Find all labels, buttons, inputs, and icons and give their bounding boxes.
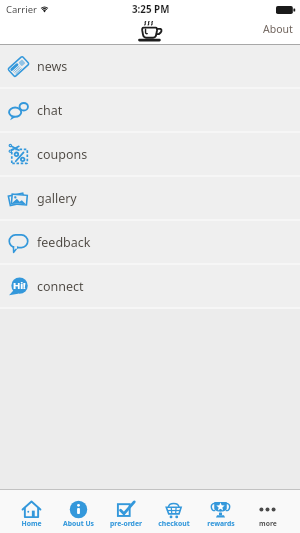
button[interactable]: feedback (0, 221, 300, 263)
button[interactable]: rewards (197, 490, 244, 533)
staticText: About Us (63, 519, 94, 528)
staticText: About (263, 22, 293, 36)
button[interactable]: About Us (55, 490, 102, 533)
button[interactable]: coupons (0, 133, 300, 175)
staticText: 3:25 PM (132, 3, 170, 16)
button[interactable]: gallery (0, 177, 300, 219)
staticText: coupons (37, 146, 88, 163)
button[interactable]: checkout (150, 490, 197, 533)
staticText: pre-order (110, 519, 142, 528)
staticText: checkout (158, 519, 190, 528)
staticText: more (259, 519, 277, 528)
staticText: feedback (37, 234, 91, 251)
staticText: news (37, 58, 68, 75)
staticText: Carrier (6, 3, 37, 16)
staticText: chat (37, 102, 63, 119)
other: more (258, 500, 277, 519)
staticText: Home (21, 519, 42, 528)
button[interactable]: chat (0, 89, 300, 131)
button[interactable]: more (244, 490, 291, 533)
button[interactable]: About (253, 20, 300, 44)
staticText: rewards (207, 519, 235, 528)
staticText: Hi! (13, 279, 26, 292)
staticText: connect (37, 278, 84, 295)
button[interactable]: news (0, 45, 300, 87)
button[interactable]: pre-order (102, 490, 149, 533)
button[interactable]: Home (8, 490, 55, 533)
staticText: gallery (37, 190, 77, 207)
button[interactable]: Hi! (0, 265, 300, 307)
